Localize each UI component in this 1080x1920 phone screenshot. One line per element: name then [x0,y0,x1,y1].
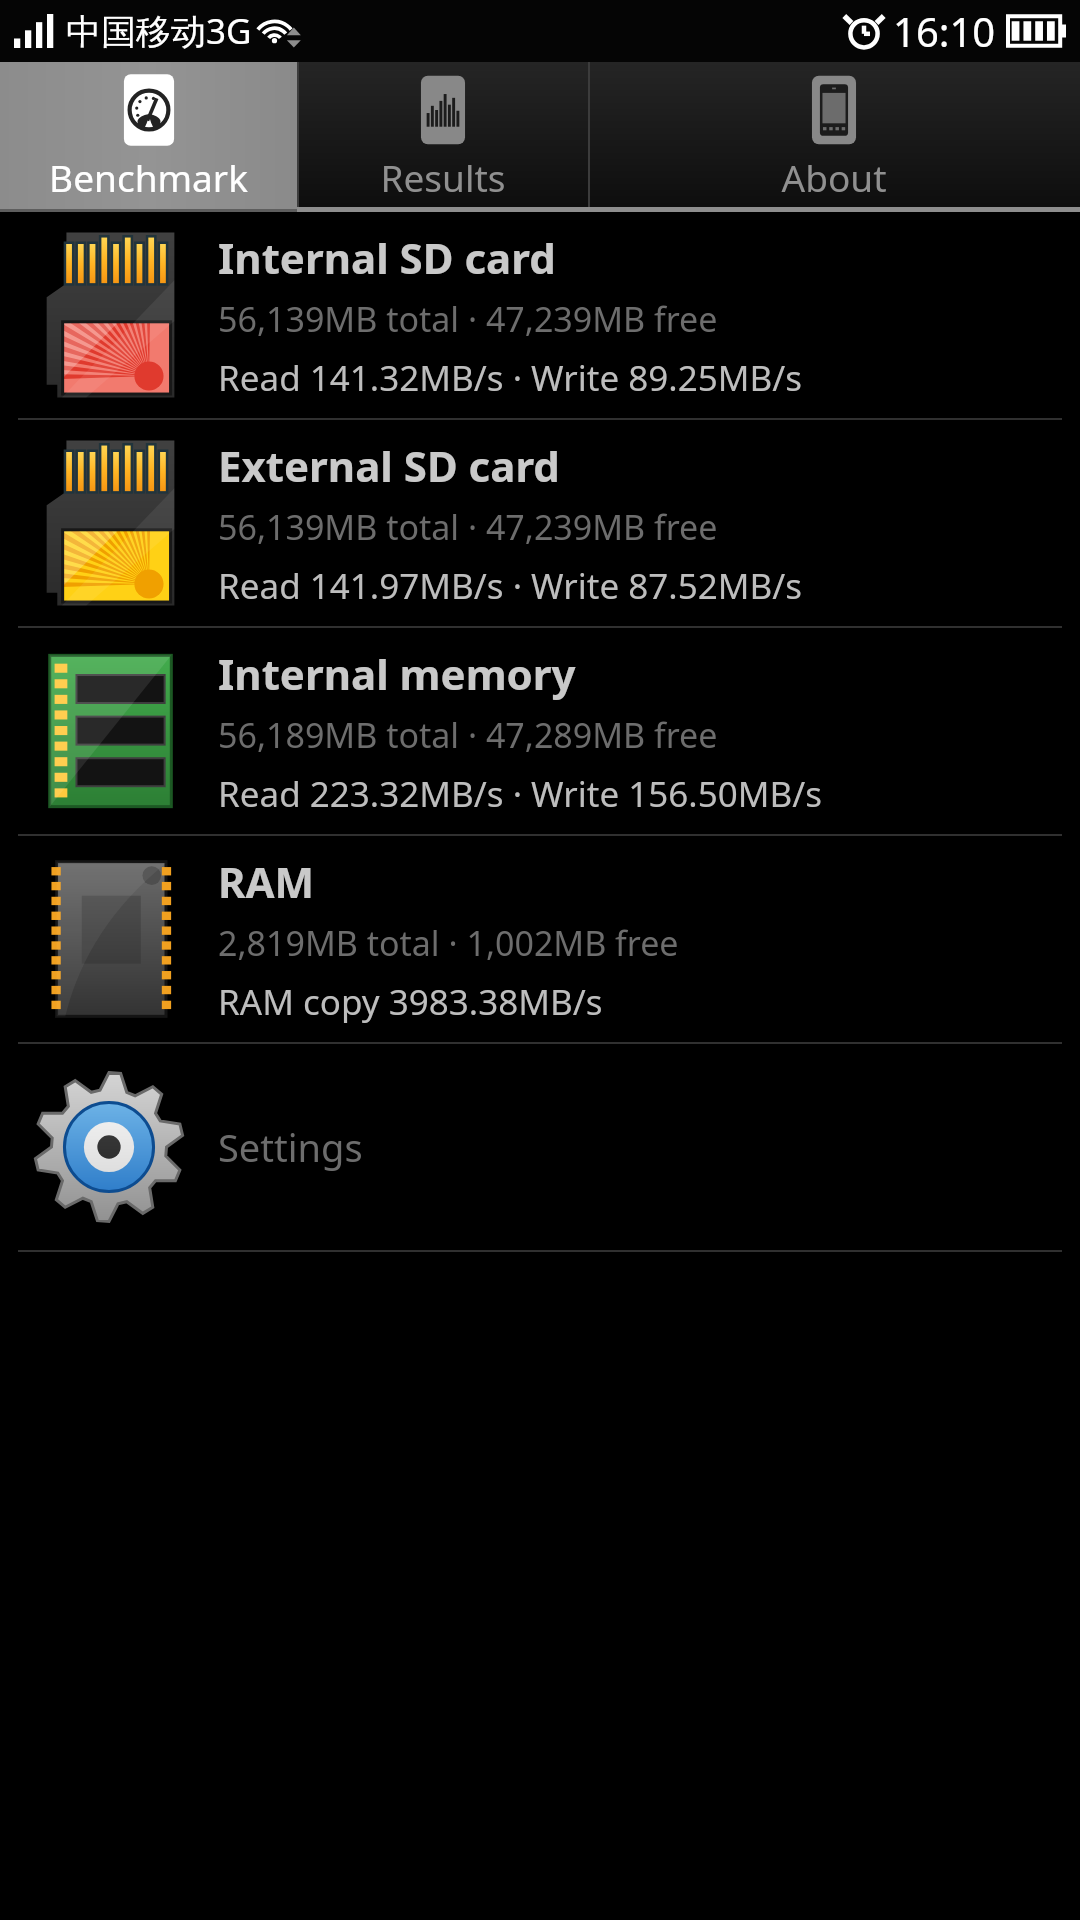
button[interactable]: Benchmark [0,62,297,212]
staticText: About [781,152,887,202]
staticText: Read 223.32MB/s · Write 156.50MB/s [218,770,823,818]
staticText: Read 141.97MB/s · Write 87.52MB/s [218,562,803,610]
staticText: 16:10 [893,4,996,58]
button[interactable]: RAM [0,836,1080,1042]
staticText: Benchmark [49,152,248,202]
other: Settings [28,1066,190,1228]
staticText: External SD card [218,437,560,494]
staticText: 56,189MB total · 47,289MB free [218,712,718,758]
button[interactable]: Settings [0,1044,1080,1250]
staticText: 中国移动3G [66,7,252,55]
staticText: RAM copy 3983.38MB/s [218,978,603,1026]
staticText: Read 141.32MB/s · Write 89.25MB/s [218,354,803,402]
button[interactable]: Results [297,62,588,212]
staticText: Internal memory [218,645,576,702]
button[interactable]: Internal memory [0,628,1080,834]
button[interactable]: External SD card [0,420,1080,626]
staticText: 56,139MB total · 47,239MB free [218,504,718,550]
button[interactable]: Internal SD card [0,212,1080,418]
staticText: Results [380,152,506,202]
button[interactable]: About [588,62,1080,212]
staticText: 56,139MB total · 47,239MB free [218,296,718,342]
staticText: RAM [218,853,315,910]
staticText: 2,819MB total · 1,002MB free [218,920,679,966]
staticText: Internal SD card [218,229,556,286]
staticText: Settings [218,1121,363,1173]
